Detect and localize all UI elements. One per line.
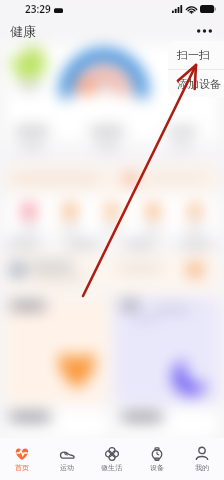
button[interactable]: More options xyxy=(192,19,216,43)
staticText: 23:29 xyxy=(25,2,51,16)
button[interactable]: 首页 xyxy=(0,438,44,480)
staticText: 添加设备 xyxy=(177,77,221,91)
button[interactable]: 添加设备 xyxy=(168,70,224,97)
staticText: 设备 xyxy=(150,463,164,472)
button[interactable]: 微生活 xyxy=(89,438,134,480)
staticText: 健康 xyxy=(10,23,36,39)
button[interactable]: 设备 xyxy=(134,438,179,480)
staticText: 运动 xyxy=(60,463,74,472)
staticText: 微生活 xyxy=(101,463,122,472)
staticText: 首页 xyxy=(15,463,29,472)
button[interactable]: 我的 xyxy=(179,438,224,480)
button[interactable]: 扫一扫 xyxy=(168,41,224,69)
button[interactable]: 运动 xyxy=(44,438,89,480)
staticText: 我的 xyxy=(195,463,209,472)
staticText: 扫一扫 xyxy=(177,48,210,62)
